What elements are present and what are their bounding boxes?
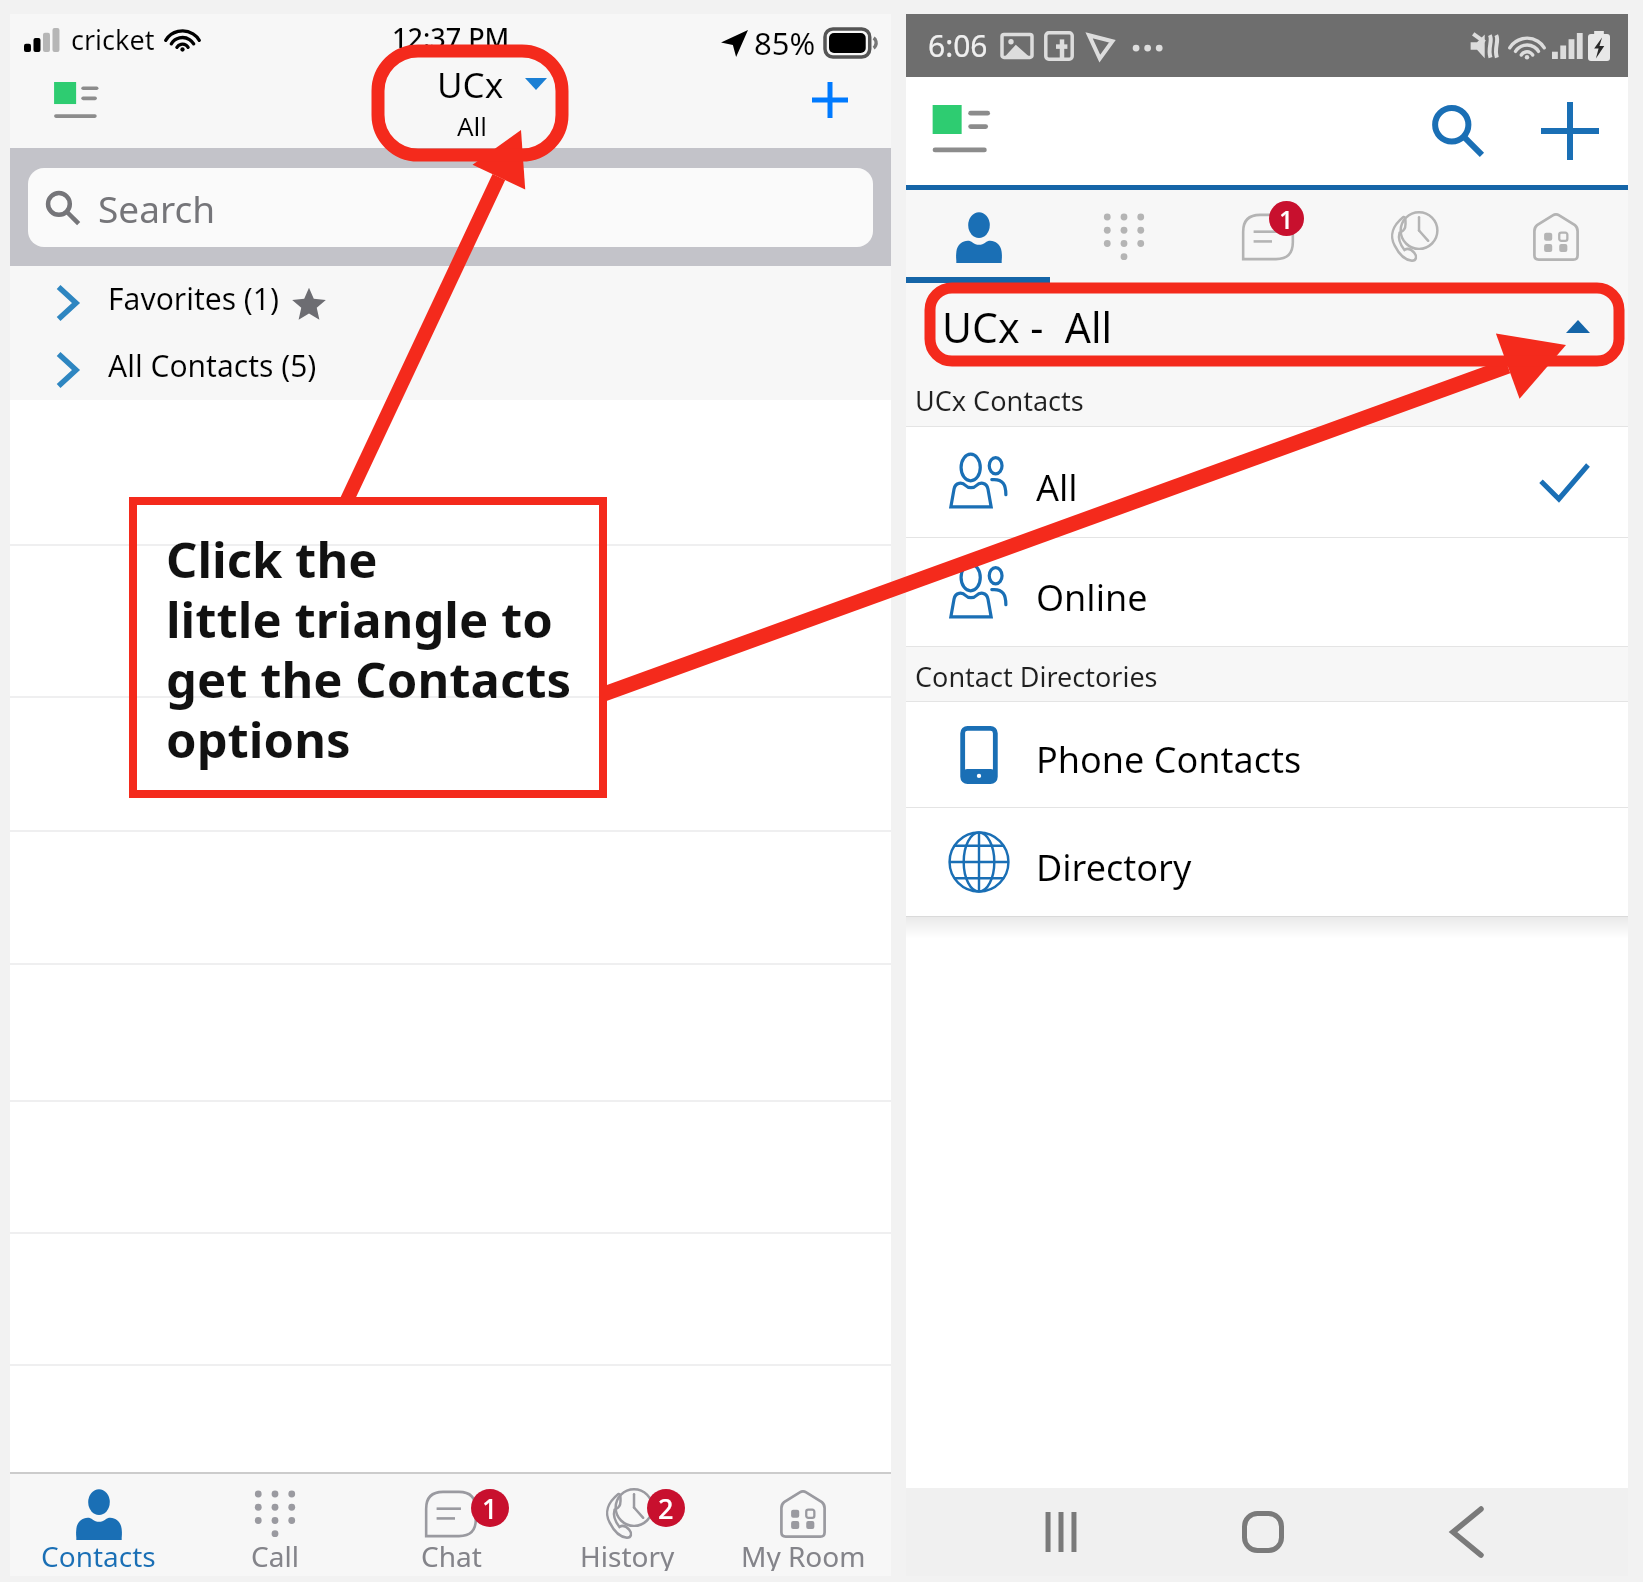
staticText: My Room xyxy=(741,1537,866,1571)
button[interactable]: UCx - All xyxy=(906,283,1628,370)
button[interactable]: Add contact xyxy=(1530,91,1610,171)
staticText: 1 xyxy=(482,1490,498,1527)
staticText: UCx xyxy=(437,61,504,109)
staticText: cricket xyxy=(71,21,155,58)
staticText: Contacts xyxy=(41,1537,156,1571)
button[interactable]: Search xyxy=(28,168,873,247)
button[interactable]: Add contact xyxy=(800,70,860,130)
button[interactable]: 2 xyxy=(539,1486,715,1576)
staticText: Click the little triangle to get the Con… xyxy=(166,526,572,772)
button[interactable]: Call xyxy=(187,1486,363,1576)
staticText: Online xyxy=(1036,573,1148,622)
button[interactable]: History xyxy=(1340,190,1484,283)
button[interactable]: Online xyxy=(906,538,1628,646)
button[interactable]: Recent apps xyxy=(1013,1488,1109,1576)
button[interactable]: 1 xyxy=(363,1486,539,1576)
button[interactable]: Chat xyxy=(1196,190,1340,283)
staticText: 12:37 PM xyxy=(392,19,510,56)
button[interactable]: My Room xyxy=(1484,190,1628,283)
staticText: 6:06 xyxy=(928,25,988,66)
button[interactable]: Phone Contacts xyxy=(906,702,1628,807)
button[interactable]: Contacts xyxy=(906,190,1051,283)
button[interactable]: All xyxy=(906,427,1628,537)
button[interactable]: Search xyxy=(1418,91,1498,171)
staticText: History xyxy=(580,1537,675,1571)
staticText: Phone Contacts xyxy=(1036,735,1302,784)
button[interactable]: Directory xyxy=(906,808,1628,916)
staticText: Favorites (1) xyxy=(108,278,279,319)
button[interactable]: Contacts xyxy=(10,1486,187,1576)
staticText: Call xyxy=(251,1537,299,1571)
staticText: All xyxy=(457,108,488,143)
staticText: Chat xyxy=(421,1537,482,1571)
staticText: UCx Contacts xyxy=(915,382,1084,419)
button[interactable]: Dialpad xyxy=(1051,190,1196,283)
staticText: All xyxy=(1036,463,1078,512)
staticText: Contact Directories xyxy=(915,658,1158,695)
staticText: Directory xyxy=(1036,843,1192,892)
staticText: Search xyxy=(98,183,216,233)
button[interactable]: My Room xyxy=(715,1486,891,1576)
button[interactable]: UCx xyxy=(437,55,587,135)
staticText: 1 xyxy=(1279,202,1294,236)
button[interactable]: Home xyxy=(1215,1488,1311,1576)
staticText: 2 xyxy=(658,1490,674,1527)
button[interactable]: Back xyxy=(1419,1488,1515,1576)
staticText: UCx - All xyxy=(942,299,1113,355)
staticText: 85% xyxy=(754,22,816,64)
button[interactable]: All Contacts (5) xyxy=(10,333,891,400)
button[interactable]: Favorites (1) xyxy=(10,266,891,333)
staticText: All Contacts (5) xyxy=(108,345,317,386)
